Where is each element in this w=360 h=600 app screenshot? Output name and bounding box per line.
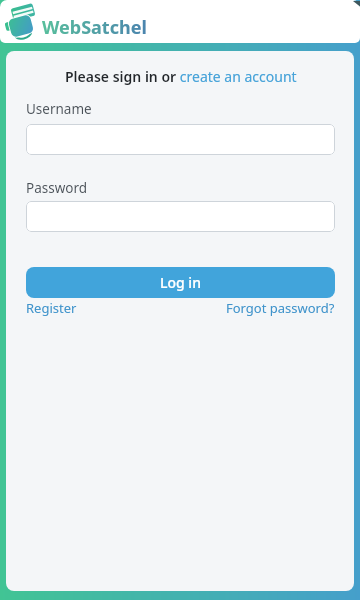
staticText: Password [26, 179, 88, 197]
button[interactable]: Log in [26, 267, 335, 298]
button[interactable] [26, 124, 335, 155]
button[interactable]: Please sign in or create an account [65, 67, 297, 86]
button[interactable]: Forgot password? [226, 299, 335, 317]
button[interactable]: Register [26, 299, 77, 317]
button[interactable] [7, 6, 35, 38]
staticText: Username [26, 100, 92, 118]
staticText: WebSatchel [42, 15, 147, 40]
staticText: Log in [160, 273, 201, 292]
button[interactable] [26, 201, 335, 232]
